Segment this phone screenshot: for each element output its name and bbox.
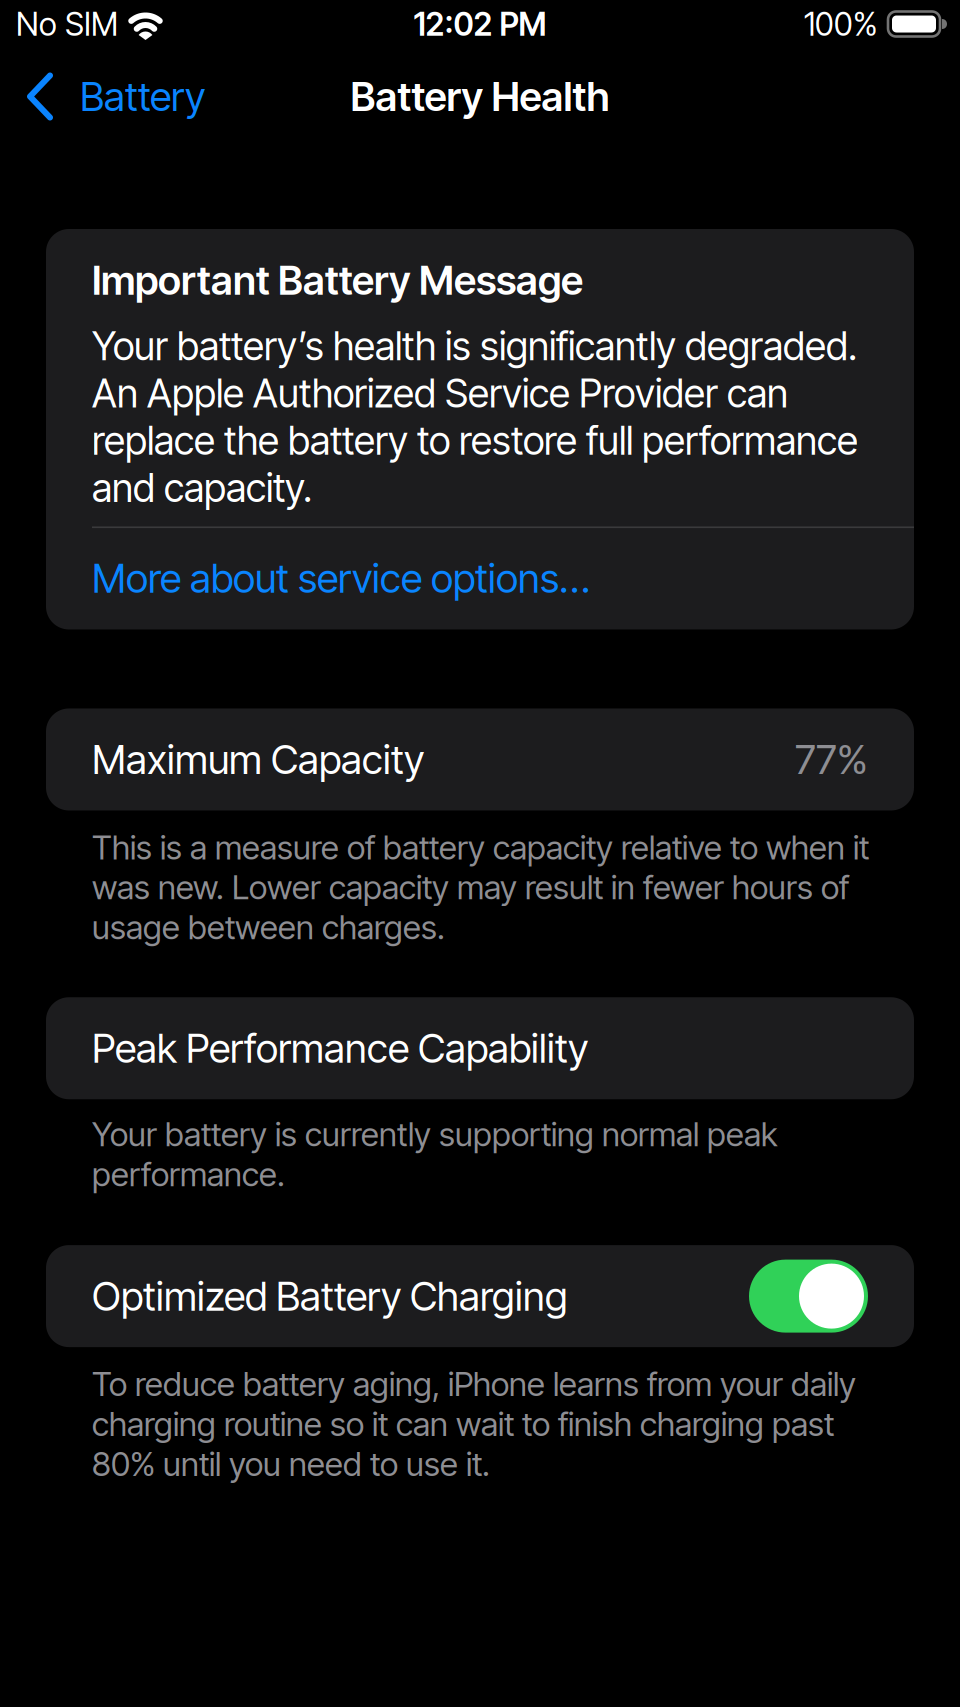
staticText: 100% — [804, 5, 878, 43]
staticText: Maximum Capacity — [92, 735, 424, 784]
staticText: 12:02 PM — [413, 5, 546, 43]
staticText: No SIM — [16, 5, 118, 43]
staticText: More about service options… — [92, 554, 590, 602]
staticText: Battery — [80, 72, 205, 121]
button[interactable]: Optimized Battery Charging — [749, 1260, 868, 1333]
staticText: Important Battery Message — [92, 256, 583, 304]
staticText: 77% — [795, 735, 868, 784]
staticText: Your battery is currently supporting nor… — [92, 1114, 777, 1194]
staticText: This is a measure of battery capacity re… — [92, 827, 869, 947]
staticText: Your battery’s health is significantly d… — [92, 322, 858, 511]
button[interactable]: More about service options… — [92, 554, 590, 602]
staticText: Battery Health — [350, 72, 609, 121]
button[interactable]: Back — [26, 72, 205, 121]
staticText: Peak Performance Capability — [92, 1024, 588, 1072]
staticText: Optimized Battery Charging — [92, 1272, 568, 1320]
staticText: To reduce battery aging, iPhone learns f… — [92, 1364, 856, 1484]
